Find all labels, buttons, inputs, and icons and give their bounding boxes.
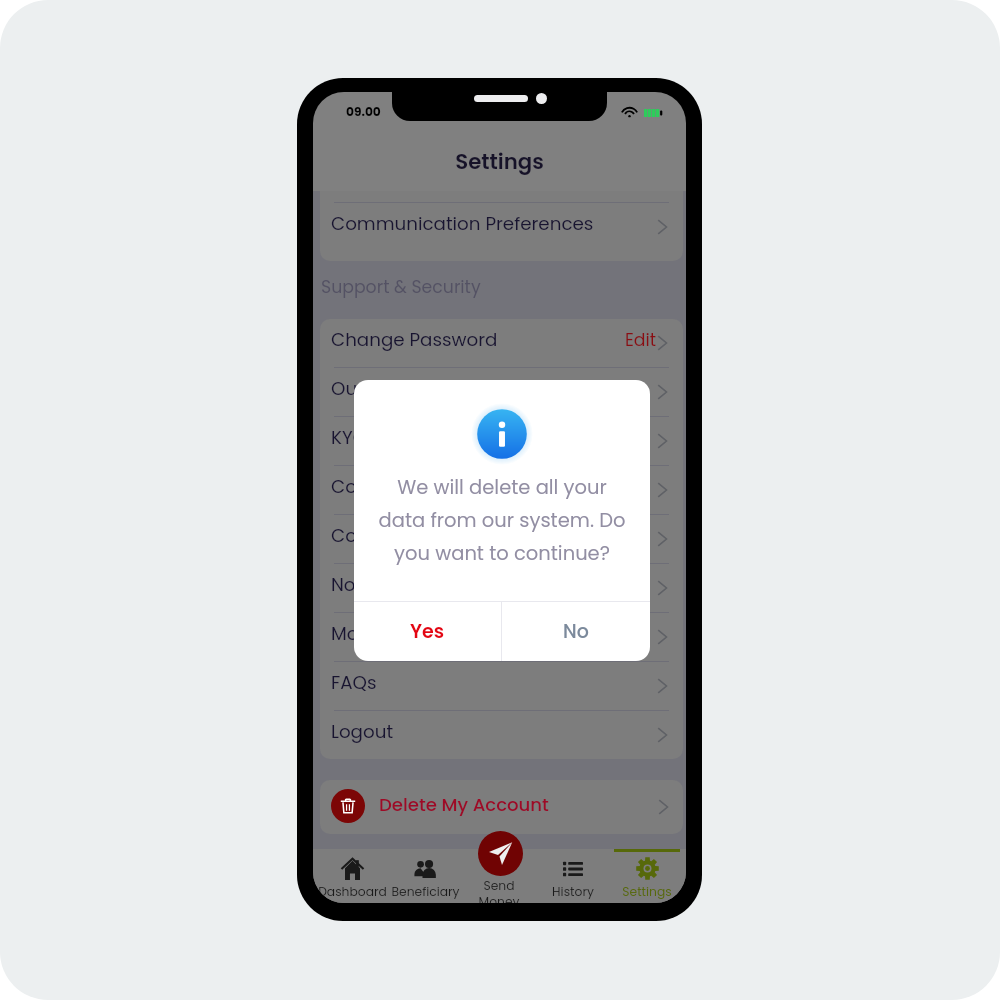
staticText: Yes (410, 618, 445, 645)
button[interactable]: Our Policies (320, 368, 683, 416)
staticText: FAQs (331, 670, 377, 696)
staticText: Delete My Account (379, 792, 549, 817)
button[interactable]: KYC Documents (320, 417, 683, 465)
staticText: Support & Security (321, 275, 481, 299)
button[interactable]: More Services (320, 613, 683, 661)
staticText: Beneficiary (389, 883, 462, 900)
button[interactable]: History (536, 849, 610, 903)
staticText: Our Policies (331, 376, 437, 402)
staticText: Contact Us (331, 474, 433, 500)
button[interactable]: Dashboard (316, 849, 389, 903)
staticText: Dashboard (316, 883, 389, 900)
staticText: No (563, 618, 589, 645)
button[interactable]: FAQs (320, 662, 683, 710)
staticText: Settings (313, 147, 686, 177)
button[interactable]: No (502, 602, 650, 661)
staticText: Send Money (462, 877, 536, 903)
button[interactable]: Change Password (320, 319, 683, 367)
staticText: 09.00 (346, 103, 381, 120)
staticText: More Services (331, 621, 458, 647)
staticText: Settings (610, 883, 684, 900)
button[interactable]: Delete My Account (320, 780, 683, 834)
button[interactable]: Settings (610, 849, 684, 903)
staticText: Change Password (331, 327, 498, 353)
button[interactable]: Send Money (462, 849, 536, 903)
staticText: Edit (625, 328, 657, 352)
button[interactable]: Yes (354, 602, 501, 661)
button[interactable]: Logout (320, 711, 683, 759)
button[interactable]: Beneficiary (389, 849, 462, 903)
staticText: KYC Documents (331, 425, 478, 451)
button[interactable]: Send Money (478, 831, 523, 876)
button[interactable]: Complaints (320, 515, 683, 563)
staticText: Communication Preferences (331, 211, 594, 237)
staticText: We will delete all your data from our sy… (376, 474, 628, 567)
staticText: Complaints (331, 523, 438, 549)
staticText: Logout (331, 719, 394, 745)
button[interactable]: Communication Preferences (320, 203, 683, 250)
button[interactable]: Contact Us (320, 466, 683, 514)
staticText: Notifications (331, 572, 445, 598)
staticText: History (536, 883, 610, 900)
button[interactable]: Notifications (320, 564, 683, 612)
